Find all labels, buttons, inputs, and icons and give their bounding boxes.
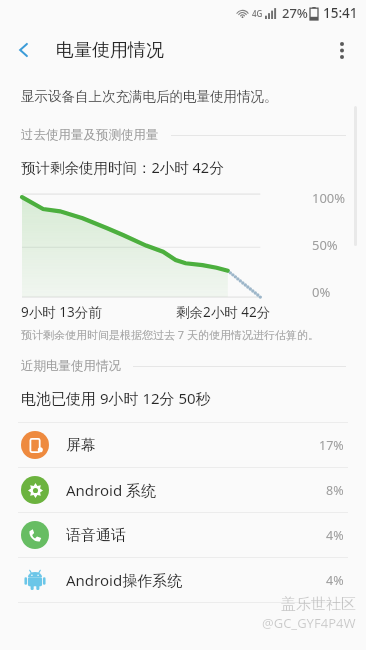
staticText: 50% (312, 236, 338, 254)
staticText: 9小时 13分前 (21, 303, 102, 321)
button[interactable]: Android 系统 (0, 468, 366, 512)
staticText: 27% (282, 4, 308, 22)
staticText: 4% (326, 572, 344, 589)
staticText: 8% (326, 482, 344, 499)
button[interactable]: Back (0, 26, 48, 74)
button[interactable]: 语音通话 (0, 513, 366, 557)
staticText: @GC_GYF4P4W (262, 614, 356, 632)
staticText: Android 系统 (66, 480, 157, 500)
staticText: 过去使用量及预测使用量 (21, 127, 159, 143)
staticText: 4G (252, 8, 263, 19)
button[interactable]: More options (318, 26, 366, 74)
staticText: 剩余2小时 42分 (176, 303, 271, 321)
staticText: 100% (312, 189, 346, 207)
staticText: 预计剩余使用时间是根据您过去 7 天的使用情况进行估算的。 (21, 327, 320, 342)
button[interactable]: 屏幕 (0, 423, 366, 467)
staticText: 预计剩余使用时间：2小时 42分 (21, 157, 224, 177)
staticText: 显示设备自上次充满电后的电量使用情况。 (21, 88, 278, 105)
staticText: 盖乐世社区 (281, 595, 356, 614)
staticText: 15:41 (323, 4, 358, 22)
staticText: 屏幕 (66, 436, 96, 455)
staticText: 近期电量使用情况 (21, 358, 121, 374)
button[interactable]: Android操作系统 (0, 558, 366, 602)
staticText: 0% (312, 283, 331, 301)
staticText: 17% (319, 437, 344, 454)
staticText: 4% (326, 527, 344, 544)
staticText: 电量使用情况 (56, 39, 164, 62)
staticText: 语音通话 (66, 526, 126, 545)
staticText: 电池已使用 9小时 12分 50秒 (21, 388, 211, 408)
staticText: Android操作系统 (66, 570, 183, 590)
